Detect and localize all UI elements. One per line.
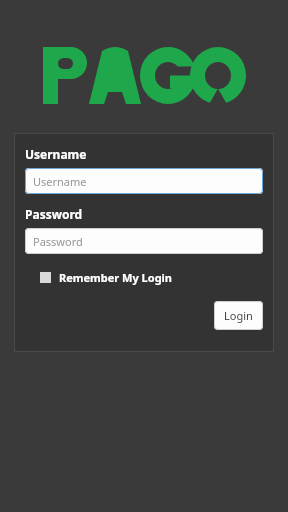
staticText: Password (25, 206, 83, 222)
staticText: Username (33, 174, 87, 189)
staticText: Login (224, 308, 253, 323)
staticText: Remember My Login (59, 270, 173, 285)
button[interactable]: Remember My Login (38, 268, 175, 287)
staticText: Username (25, 146, 87, 162)
button[interactable]: Username (25, 168, 263, 194)
staticText: Password (33, 234, 83, 249)
other: PAGO logo (43, 47, 246, 104)
button[interactable]: Password (25, 228, 263, 254)
button[interactable]: Login (214, 301, 263, 330)
